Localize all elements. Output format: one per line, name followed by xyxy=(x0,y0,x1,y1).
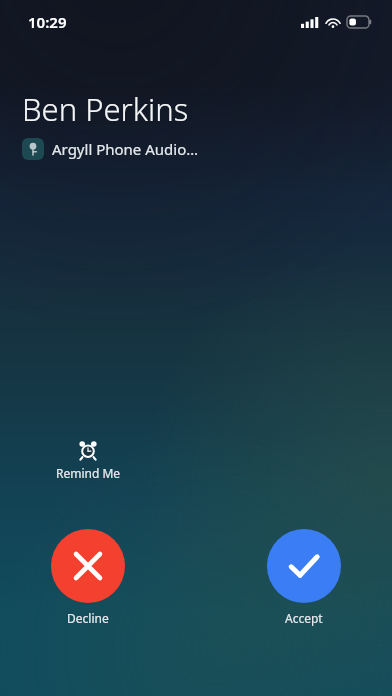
staticText: Accept xyxy=(285,610,323,626)
button[interactable]: Accept xyxy=(252,524,356,626)
staticText: Ben Perkins xyxy=(22,88,189,130)
staticText: 10:29 xyxy=(28,12,67,32)
button[interactable]: Remind Me xyxy=(53,438,123,483)
staticText: Remind Me xyxy=(56,465,121,481)
staticText: Decline xyxy=(67,610,109,626)
staticText: Argyll Phone Audio… xyxy=(52,139,199,159)
button[interactable]: Decline xyxy=(36,524,140,626)
